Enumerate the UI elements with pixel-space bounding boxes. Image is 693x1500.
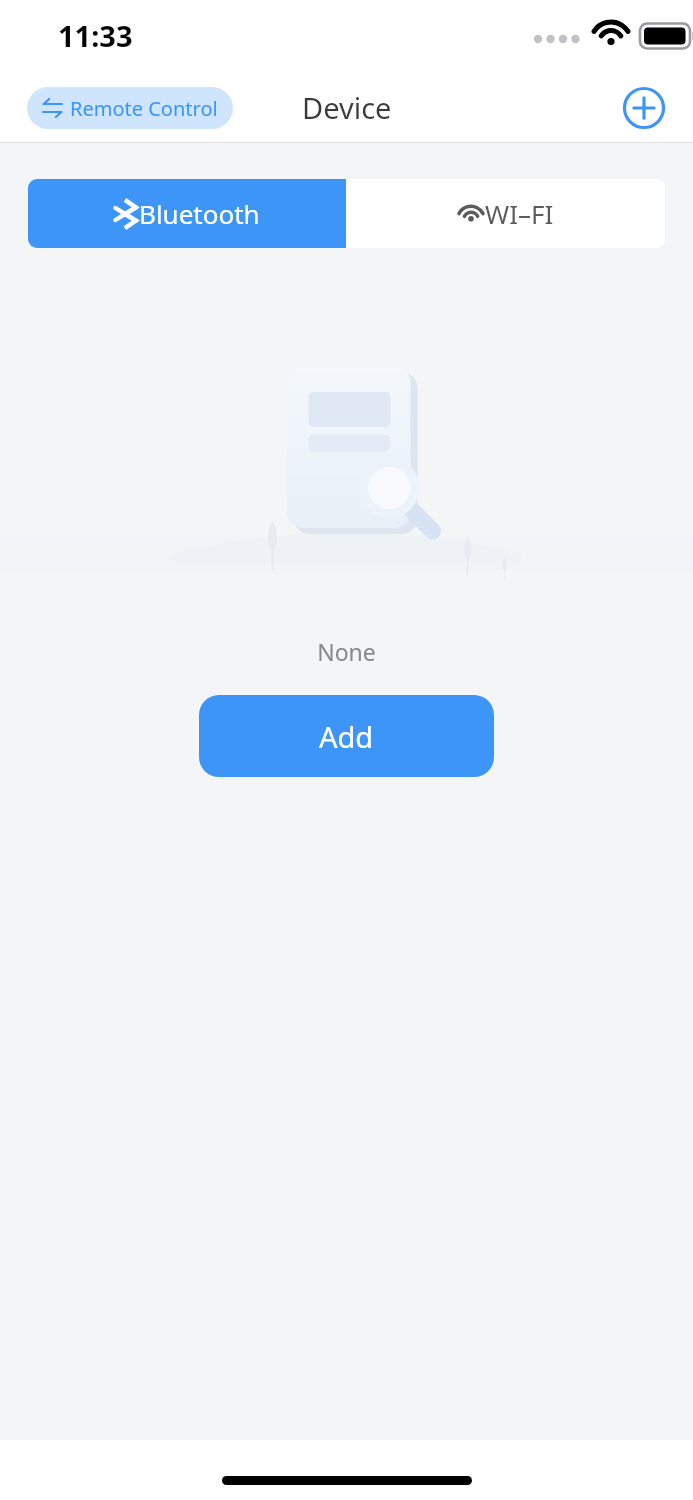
- staticText: Add: [319, 717, 374, 756]
- button[interactable]: Add: [199, 695, 494, 777]
- staticText: 11:33: [58, 16, 133, 55]
- staticText: Device: [302, 88, 392, 127]
- button[interactable]: WI–FI: [346, 179, 665, 248]
- staticText: Remote Control: [70, 95, 218, 122]
- button[interactable]: Add device: [621, 85, 667, 131]
- button[interactable]: Remote Control: [27, 87, 233, 129]
- button[interactable]: Bluetooth: [28, 179, 346, 248]
- staticText: WI–FI: [485, 196, 554, 231]
- staticText: None: [0, 636, 693, 667]
- staticText: Bluetooth: [139, 196, 260, 231]
